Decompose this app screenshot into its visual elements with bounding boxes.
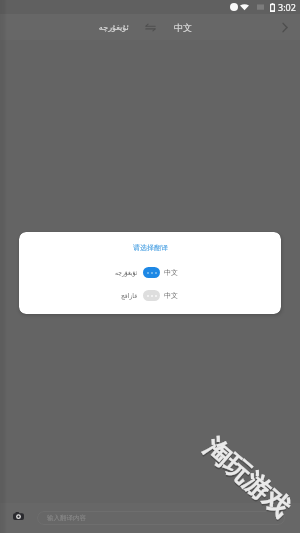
button[interactable]: قازاقچ bbox=[19, 290, 281, 301]
button[interactable]: 输入翻译内容 bbox=[37, 511, 285, 525]
button[interactable]: Camera bbox=[9, 507, 27, 525]
button[interactable]: More bbox=[276, 18, 294, 36]
button[interactable]: ئۇيغۇرچە bbox=[19, 267, 281, 278]
staticText: قازاقچ bbox=[121, 292, 138, 299]
staticText: ئۇيغۇرچە bbox=[115, 269, 138, 276]
staticText: ئۇيغۇرچە bbox=[99, 23, 129, 32]
staticText: 中文 bbox=[164, 268, 178, 277]
staticText: 中文 bbox=[164, 291, 178, 300]
button[interactable]: Swap languages bbox=[143, 21, 157, 33]
button[interactable]: ئۇيغۇرچە bbox=[96, 16, 132, 38]
staticText: 3:02 bbox=[278, 1, 296, 13]
staticText: 中文 bbox=[174, 22, 192, 33]
staticText: 请选择翻译 bbox=[133, 243, 168, 252]
staticText: 输入翻译内容 bbox=[47, 514, 86, 522]
button[interactable]: 中文 bbox=[172, 16, 194, 38]
